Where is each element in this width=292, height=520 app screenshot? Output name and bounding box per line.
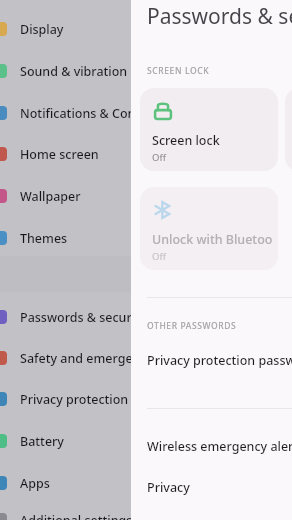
staticText: Privacy protection passw [147, 352, 292, 369]
staticText: Notifications & Cont [20, 105, 131, 122]
staticText: Sound & vibration [20, 63, 128, 80]
button[interactable]: Display [0, 14, 131, 44]
staticText: Display [20, 21, 64, 38]
other: Screen lock [152, 100, 174, 122]
button[interactable]: Unlock with Bluetooth [140, 187, 278, 270]
button[interactable]: Battery [0, 426, 131, 456]
button[interactable]: Sound & vibration [0, 56, 131, 86]
staticText: Passwords & securi [147, 2, 292, 31]
other: Unlock with Bluetooth [152, 199, 174, 221]
staticText: Off [152, 250, 166, 263]
button[interactable]: Alert [285, 88, 292, 171]
button[interactable]: Passwords & securi [0, 302, 131, 332]
button[interactable]: Privacy protection [0, 384, 131, 414]
button[interactable]: Privacy [0, 473, 292, 507]
button[interactable]: Notifications & Cont [0, 98, 131, 128]
staticText: Screen lock [152, 132, 220, 149]
button[interactable]: Wireless emergency aler [0, 432, 292, 466]
button[interactable]: Privacy protection passw [0, 345, 292, 379]
staticText: Off [152, 151, 166, 164]
staticText: SCREEN LOCK [147, 65, 210, 77]
button[interactable]: Themes [0, 223, 131, 253]
staticText: Privacy [147, 479, 190, 496]
button[interactable]: Screen lock [140, 88, 278, 171]
staticText: Unlock with Bluetoo [152, 231, 273, 248]
staticText: Passwords & securi [20, 309, 131, 326]
staticText: Wireless emergency aler [147, 438, 292, 455]
staticText: Apps [20, 475, 50, 492]
button[interactable]: Additional settings [0, 505, 131, 520]
staticText: Privacy protection [20, 391, 129, 408]
staticText: Battery [20, 433, 64, 450]
staticText: Themes [20, 230, 68, 247]
button[interactable]: Safety and emergen [0, 343, 131, 373]
staticText: OTHER PASSWORDS [147, 320, 237, 332]
staticText: Safety and emergen [20, 350, 131, 367]
staticText: Additional settings [20, 512, 131, 520]
button[interactable]: Wallpaper [0, 181, 131, 211]
button[interactable]: Home screen [0, 139, 131, 169]
staticText: Home screen [20, 146, 99, 163]
staticText: Wallpaper [20, 188, 81, 205]
button[interactable]: Apps [0, 468, 131, 498]
